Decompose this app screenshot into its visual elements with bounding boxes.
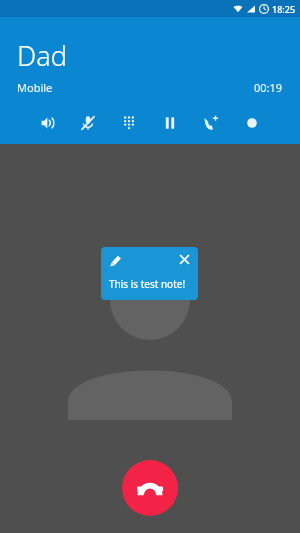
button[interactable]: Hold call — [155, 108, 185, 138]
staticText: Mobile — [17, 80, 53, 95]
staticText: 00:19 — [254, 80, 283, 95]
button[interactable]: Add call — [196, 108, 226, 138]
button[interactable]: Record call — [237, 108, 267, 138]
button[interactable]: Mute microphone — [73, 108, 103, 138]
button[interactable]: Close note — [178, 253, 191, 266]
button[interactable]: Dialpad — [114, 108, 144, 138]
button[interactable]: Speaker — [33, 108, 63, 138]
staticText: 18:25 — [272, 3, 296, 15]
button[interactable]: End call — [122, 460, 178, 516]
button[interactable]: Edit note — [101, 247, 198, 300]
button[interactable]: Edit note — [108, 253, 123, 268]
staticText: Dad — [17, 37, 67, 74]
staticText: This is test note! — [109, 277, 186, 291]
